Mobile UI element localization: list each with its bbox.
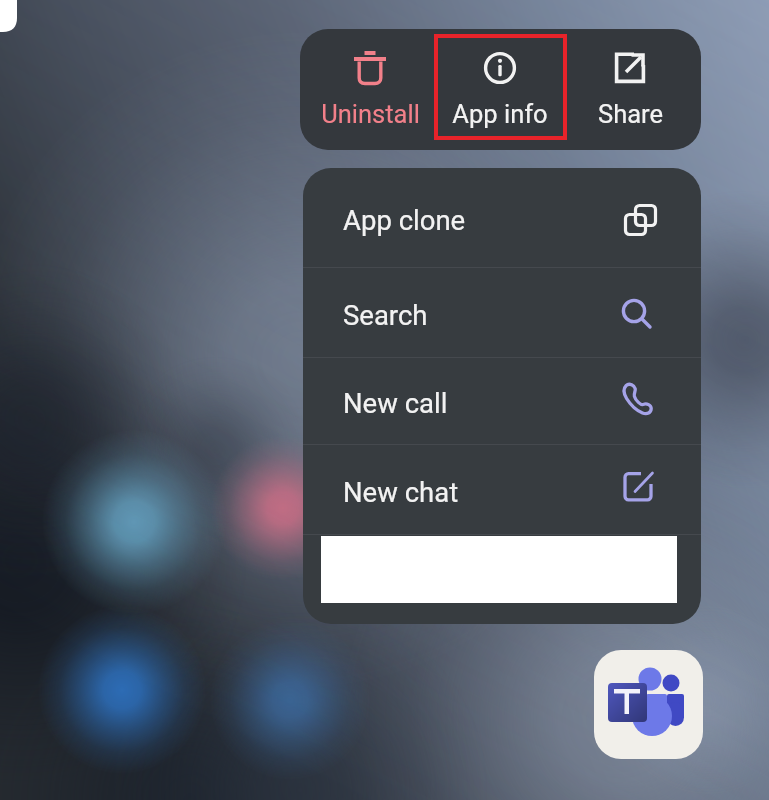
- staticText: Share: [598, 99, 663, 129]
- button[interactable]: New call: [303, 358, 701, 444]
- button[interactable]: App clone: [303, 168, 701, 267]
- button[interactable]: Uninstall: [305, 29, 435, 150]
- button[interactable]: New chat: [303, 445, 701, 534]
- staticText: Search: [343, 299, 428, 331]
- button[interactable]: App info: [435, 29, 565, 150]
- button[interactable]: Search: [303, 268, 701, 357]
- staticText: App clone: [343, 204, 466, 236]
- button[interactable]: Share: [565, 29, 695, 150]
- staticText: Uninstall: [321, 99, 420, 129]
- staticText: New chat: [343, 476, 459, 508]
- staticText: App info: [452, 99, 548, 129]
- staticText: New call: [343, 387, 448, 419]
